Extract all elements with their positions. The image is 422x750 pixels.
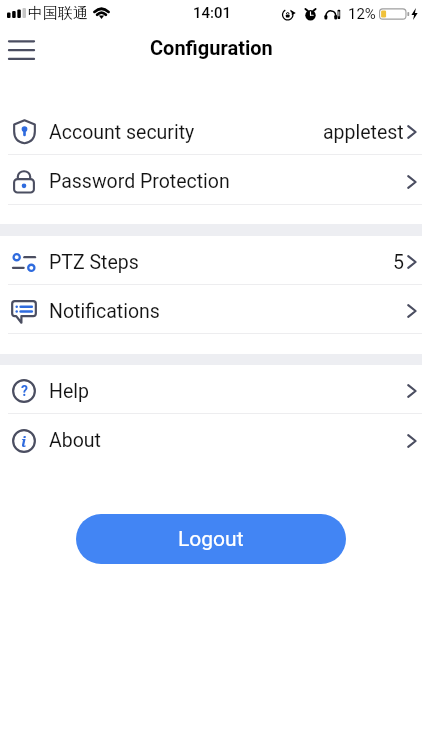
- staticText: appletest: [323, 121, 404, 144]
- staticText: 5: [393, 251, 404, 274]
- staticText: ?: [21, 383, 28, 399]
- staticText: 中国联通: [28, 4, 88, 23]
- staticText: Configuration: [150, 36, 273, 59]
- button[interactable]: ?: [0, 365, 422, 414]
- staticText: Notifications: [49, 300, 160, 323]
- staticText: i: [21, 431, 27, 451]
- button[interactable]: Password Protection: [0, 155, 422, 205]
- button[interactable]: i: [0, 414, 422, 463]
- button[interactable]: PTZ Steps: [0, 236, 422, 285]
- staticText: 14:01: [193, 4, 232, 22]
- staticText: Password Protection: [49, 170, 230, 193]
- button[interactable]: Account security: [0, 106, 422, 155]
- staticText: 12%: [348, 5, 376, 23]
- button[interactable]: Notifications: [0, 285, 422, 334]
- button[interactable]: Menu: [0, 27, 43, 71]
- staticText: About: [49, 429, 101, 452]
- staticText: Account security: [49, 121, 195, 144]
- staticText: Logout: [178, 527, 244, 552]
- staticText: Help: [49, 380, 89, 403]
- button[interactable]: Logout: [76, 514, 346, 564]
- staticText: PTZ Steps: [49, 251, 139, 274]
